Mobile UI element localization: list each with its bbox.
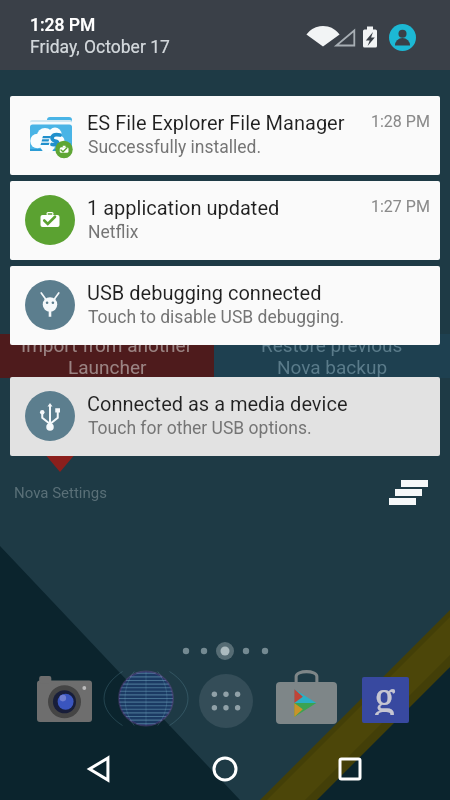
staticText: Import from another [21, 334, 193, 356]
staticText: Restore previous [261, 334, 403, 356]
button[interactable]: Back [75, 744, 125, 794]
staticText: USB debugging connected [87, 281, 427, 304]
staticText: ES File Explorer File Manager [87, 111, 372, 134]
staticText: 1:27 PM [371, 197, 430, 216]
button[interactable]: 1 application updated [10, 181, 440, 260]
button[interactable]: Restore previous [214, 334, 450, 378]
button[interactable]: Browser [119, 671, 173, 726]
button[interactable]: ES File Explorer File Manager [10, 96, 440, 175]
staticText: 1:28 PM [30, 15, 96, 36]
button[interactable]: Nova Settings [38, 446, 82, 506]
staticText: Connected as a media device [87, 392, 427, 415]
button[interactable]: Profile [389, 24, 416, 51]
button[interactable]: Recents [325, 744, 375, 794]
button[interactable]: Camera [37, 676, 92, 722]
button[interactable]: Import from another [0, 334, 214, 378]
button[interactable]: Connected as a media device [10, 377, 440, 456]
staticText: Touch to disable USB debugging. [88, 307, 345, 328]
button[interactable]: Google [362, 677, 409, 723]
staticText: Launcher [68, 356, 147, 378]
staticText: Netflix [88, 222, 139, 243]
staticText: g [374, 669, 396, 715]
button[interactable]: Home [200, 744, 250, 794]
button[interactable]: Play Store [276, 670, 337, 724]
staticText: Touch for other USB options. [88, 418, 312, 439]
staticText: Nova backup [277, 356, 388, 378]
staticText: 1:28 PM [371, 112, 430, 131]
staticText: 1 application updated [87, 196, 372, 219]
staticText: Successfully installed. [88, 137, 262, 158]
staticText: Nova Settings [14, 484, 107, 502]
staticText: Friday, October 17 [30, 37, 170, 58]
button[interactable]: USB debugging connected [10, 266, 440, 345]
button[interactable]: Apps [199, 674, 253, 728]
button[interactable]: Menu [389, 474, 429, 506]
